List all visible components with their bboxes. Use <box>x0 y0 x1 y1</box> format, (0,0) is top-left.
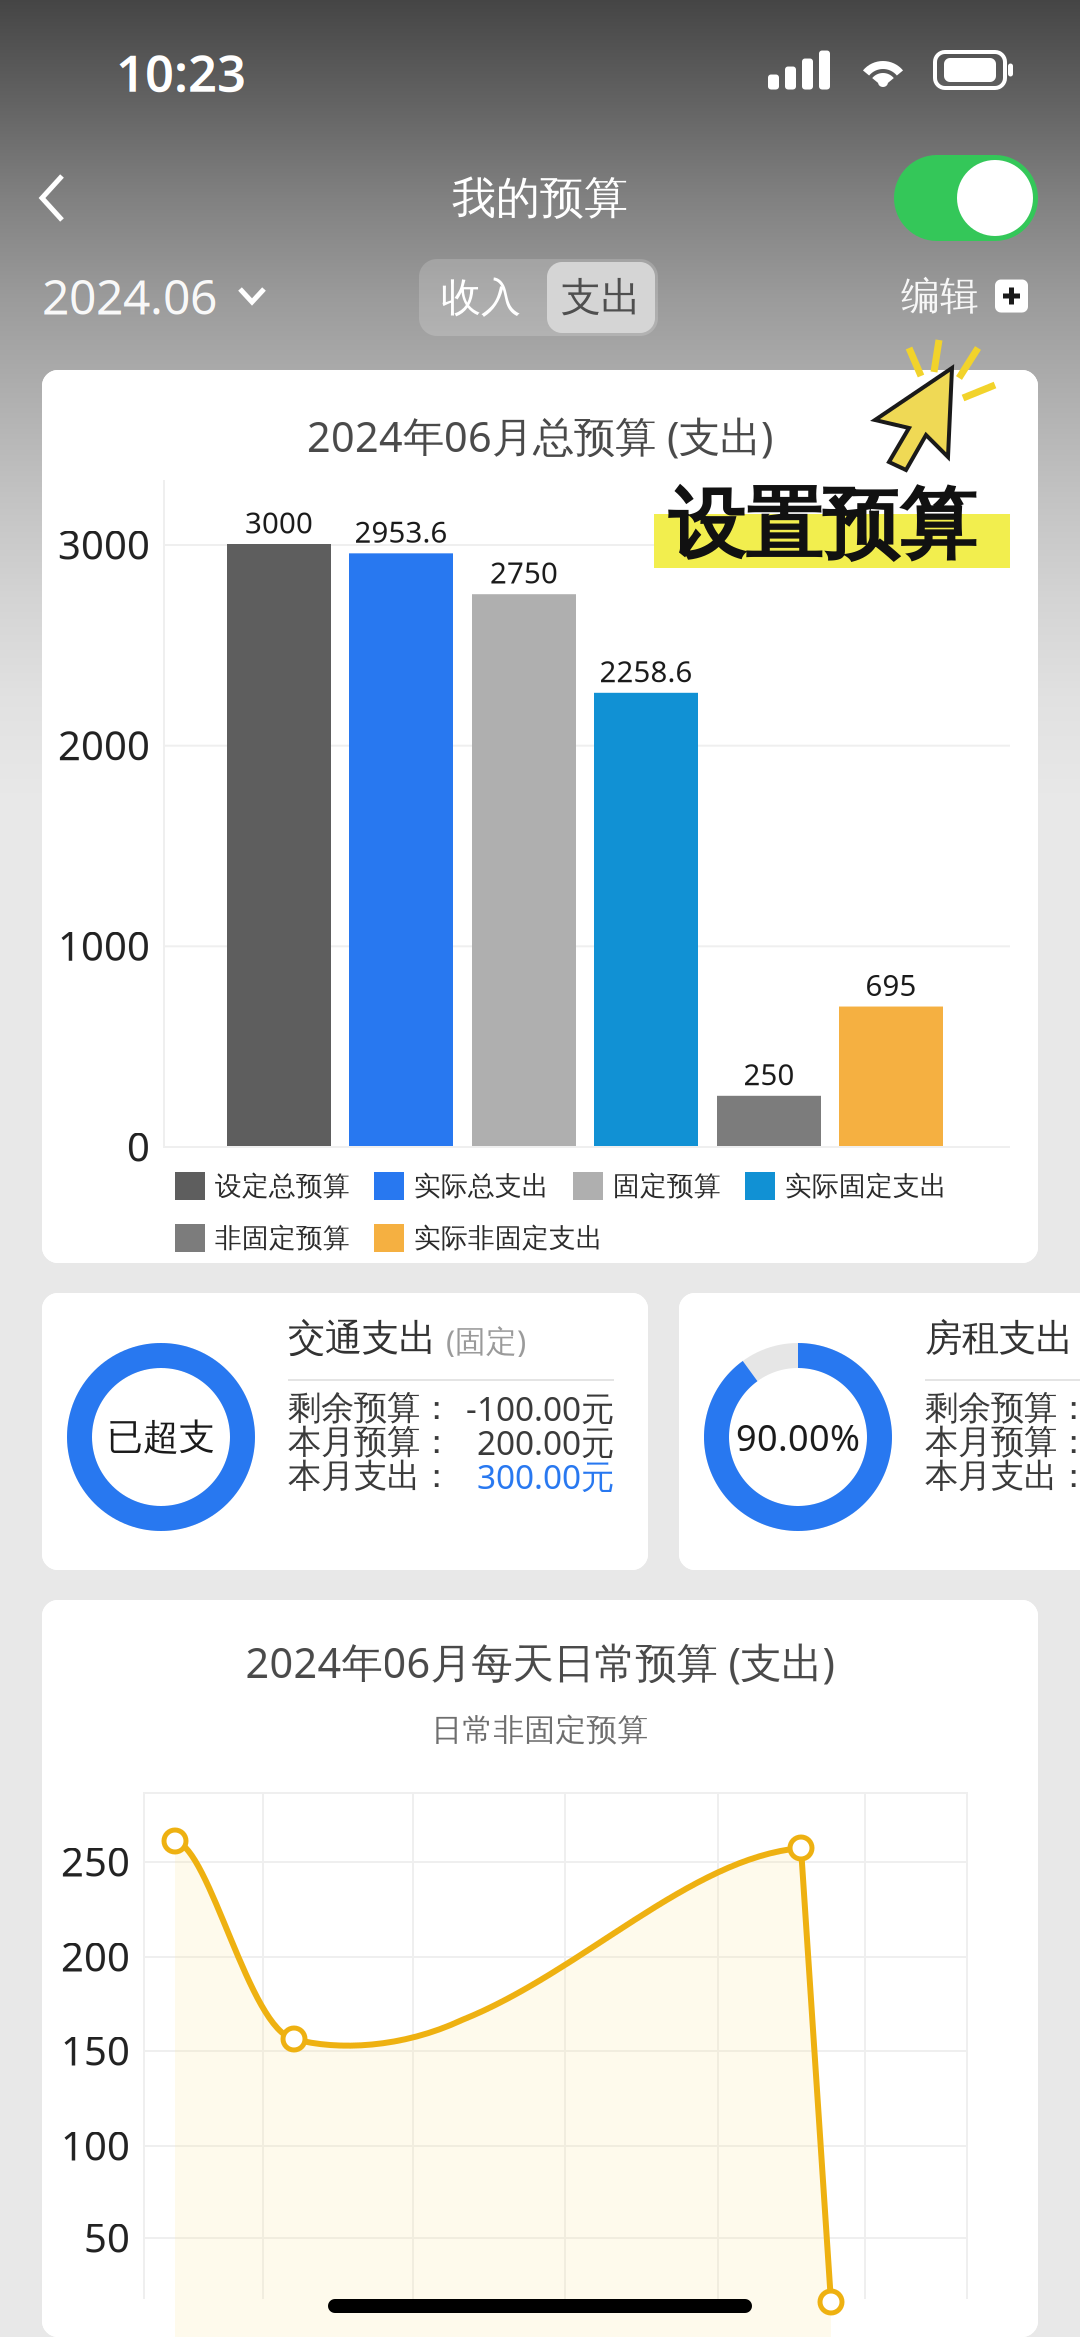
button[interactable]: Edit budget <box>848 260 1028 332</box>
staticText: 编辑 <box>901 272 979 320</box>
staticText: 本月预算： <box>925 1421 1080 1462</box>
staticText: 本月支出： <box>288 1455 453 1496</box>
button[interactable]: Select month <box>42 260 272 332</box>
staticText: 剩余预算： <box>288 1387 453 1428</box>
staticText: 2953.6 <box>354 512 447 551</box>
staticText: 已超支 <box>107 1415 215 1459</box>
staticText: 交通支出 <box>288 1315 436 1361</box>
staticText: 剩余预算： <box>925 1387 1080 1428</box>
staticText: 固定预算 <box>613 1170 721 1202</box>
staticText: 50 <box>84 2210 130 2263</box>
staticText: 2000 <box>58 718 150 771</box>
staticText: 3000 <box>245 502 313 541</box>
staticText: 300.00元 <box>477 1454 614 1498</box>
staticText: 我的预算 <box>452 171 628 225</box>
staticText: 3000 <box>58 517 150 570</box>
staticText: 250 <box>61 1834 130 1887</box>
staticText: 2024.06 <box>42 264 217 328</box>
button[interactable]: 收入 <box>419 259 543 336</box>
staticText: 实际总支出 <box>414 1170 549 1202</box>
staticText: 150 <box>61 2023 130 2076</box>
staticText: 设置预算 <box>668 477 976 572</box>
staticText: 695 <box>865 965 916 1004</box>
staticText: 2750 <box>490 553 558 592</box>
staticText: 200.00元 <box>477 1420 614 1464</box>
staticText: 非固定预算 <box>215 1222 350 1254</box>
button[interactable]: Back <box>10 150 106 246</box>
staticText: 200 <box>61 1929 130 1982</box>
staticText: 90.00% <box>736 1413 860 1461</box>
staticText: 100 <box>61 2118 130 2171</box>
staticText: 支出 <box>561 273 641 322</box>
staticText: 250 <box>743 1054 794 1093</box>
staticText: 2024年06月每天日常预算 (支出) <box>245 1635 834 1689</box>
staticText: -100.00元 <box>466 1386 614 1430</box>
staticText: 10:23 <box>116 38 246 106</box>
staticText: 2258.6 <box>599 651 692 690</box>
staticText: 本月支出： <box>925 1455 1080 1496</box>
staticText: 0 <box>127 1119 150 1172</box>
staticText: 实际固定支出 <box>785 1170 947 1202</box>
staticText: 收入 <box>441 273 521 322</box>
button[interactable]: 支出 <box>547 262 655 333</box>
staticText: 1000 <box>58 919 150 972</box>
staticText: (固定) <box>446 1320 526 1361</box>
staticText: 实际非固定支出 <box>414 1222 603 1254</box>
staticText: 日常非固定预算 <box>431 1711 648 1749</box>
staticText: 2024年06月总预算 (支出) <box>307 409 773 463</box>
staticText: 本月预算： <box>288 1421 453 1462</box>
staticText: 设定总预算 <box>215 1170 350 1202</box>
button[interactable]: Toggle budget <box>894 155 1038 241</box>
staticText: 房租支出 <box>925 1315 1073 1361</box>
